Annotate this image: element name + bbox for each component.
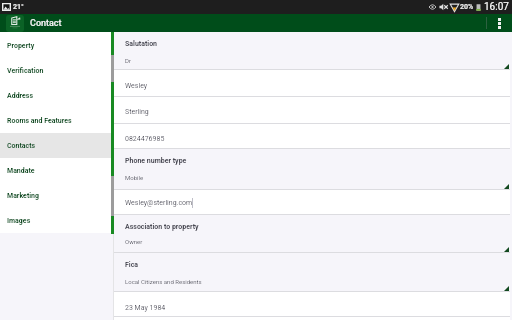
button[interactable]: Fica — [114, 253, 512, 292]
button[interactable]: Wesley — [114, 70, 512, 97]
staticText: Wesley@sterling.com — [125, 199, 193, 207]
staticText: Address — [7, 92, 34, 100]
button[interactable]: Association to property — [114, 215, 512, 253]
staticText: Local Citizens and Residents — [125, 278, 202, 285]
staticText: 23 May 1984 — [125, 304, 166, 312]
staticText: Verification — [7, 67, 44, 75]
staticText: Association to property — [125, 223, 199, 231]
staticText: Sterling — [125, 108, 149, 116]
staticText: Salutation — [125, 40, 158, 48]
button[interactable]: Property — [0, 33, 111, 58]
staticText: 21° — [13, 3, 24, 11]
button[interactable]: 0824476985 — [114, 124, 512, 149]
staticText: Contacts — [7, 142, 36, 150]
staticText: Property — [7, 42, 35, 50]
staticText: Contact — [30, 18, 62, 29]
staticText: Mobile — [125, 174, 144, 181]
button[interactable]: Images — [0, 208, 111, 233]
staticText: Fica — [125, 261, 139, 269]
staticText: 16:07 — [484, 1, 509, 13]
button[interactable]: Wesley@sterling.com — [114, 190, 512, 215]
button[interactable]: Marketing — [0, 183, 111, 208]
button[interactable]: Mandate — [0, 158, 111, 183]
staticText: Owner — [125, 238, 143, 245]
button[interactable]: Navigate up — [6, 15, 24, 32]
button[interactable]: Phone number type — [114, 149, 512, 190]
button[interactable]: 23 May 1984 — [114, 292, 512, 317]
staticText: Dr — [125, 57, 131, 64]
staticText: Marketing — [7, 192, 40, 200]
button[interactable]: Salutation — [114, 32, 512, 70]
staticText: Images — [7, 217, 31, 225]
staticText: 0824476985 — [125, 135, 165, 143]
staticText: 20% — [460, 3, 474, 11]
button[interactable]: Rooms and Features — [0, 108, 111, 133]
button[interactable]: Verification — [0, 58, 111, 83]
staticText: Mandate — [7, 167, 35, 175]
button[interactable]: Contacts — [0, 133, 111, 158]
button[interactable]: More options — [487, 14, 512, 32]
staticText: Rooms and Features — [7, 117, 72, 125]
button[interactable]: Sterling — [114, 97, 512, 124]
button[interactable]: Address — [0, 83, 111, 108]
staticText: Wesley — [125, 82, 148, 90]
staticText: Phone number type — [125, 157, 187, 165]
